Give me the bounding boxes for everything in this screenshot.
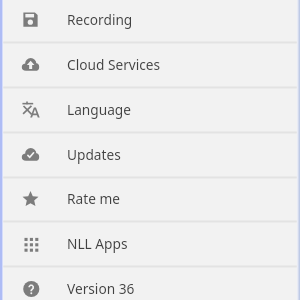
staticText: Cloud Services — [67, 55, 161, 74]
staticText: Rate me — [67, 189, 120, 208]
staticText: Version 36 — [67, 279, 135, 298]
button[interactable]: Version 36 — [0, 266, 300, 300]
staticText: Updates — [67, 145, 121, 164]
button[interactable]: Language — [0, 87, 300, 132]
button[interactable]: Updates — [0, 132, 300, 177]
staticText: NLL Apps — [67, 234, 128, 253]
button[interactable]: Recording — [0, 0, 300, 42]
button[interactable]: Rate me — [0, 176, 300, 221]
staticText: Recording — [67, 10, 133, 29]
staticText: Language — [67, 100, 132, 119]
button[interactable]: NLL Apps — [0, 221, 300, 266]
button[interactable]: Cloud Services — [0, 42, 300, 87]
